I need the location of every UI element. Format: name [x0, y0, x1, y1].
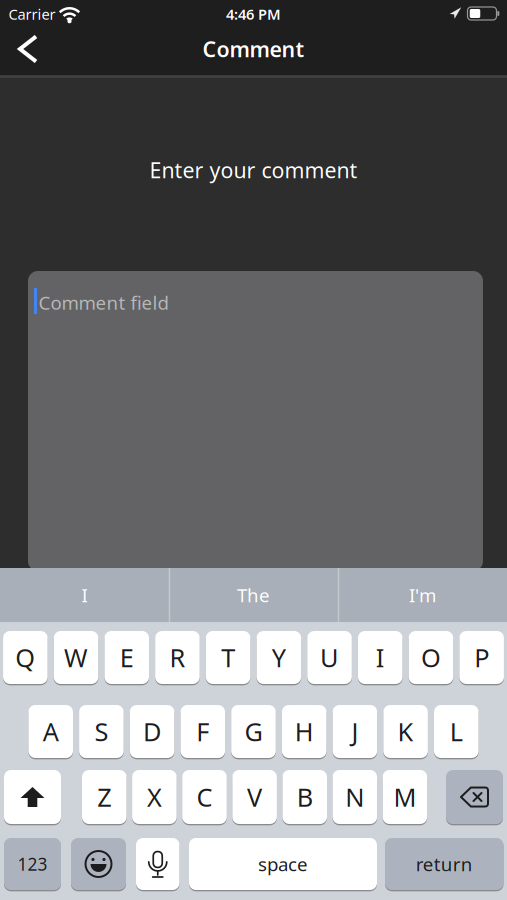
staticText: O — [421, 641, 441, 674]
button[interactable]: H — [282, 705, 326, 758]
button[interactable]: B — [282, 770, 327, 824]
button[interactable]: G — [231, 705, 276, 758]
staticText: I — [81, 583, 87, 607]
button[interactable]: Delete — [446, 770, 503, 824]
button[interactable]: V — [232, 770, 277, 824]
staticText: C — [196, 780, 212, 814]
button[interactable]: 123 — [4, 838, 61, 890]
staticText: R — [169, 641, 185, 674]
button[interactable]: Y — [257, 631, 301, 684]
staticText: P — [474, 641, 489, 674]
staticText: B — [297, 780, 313, 814]
button[interactable]: I — [358, 631, 403, 684]
staticText: K — [398, 715, 414, 748]
button[interactable]: O — [409, 631, 453, 684]
button[interactable]: X — [132, 770, 177, 824]
staticText: E — [120, 641, 134, 674]
button[interactable]: L — [434, 705, 479, 758]
button[interactable]: N — [332, 770, 377, 824]
staticText: Z — [97, 780, 111, 814]
button[interactable]: U — [307, 631, 352, 684]
button[interactable]: F — [180, 705, 225, 758]
button[interactable]: S — [79, 705, 124, 758]
staticText: T — [221, 641, 235, 674]
button[interactable]: Z — [82, 770, 127, 824]
button[interactable]: E — [104, 631, 149, 684]
button[interactable]: A — [28, 705, 73, 758]
button[interactable]: Comment field — [28, 271, 483, 571]
staticText: W — [64, 641, 88, 674]
button[interactable]: I — [4, 568, 164, 622]
staticText: Carrier — [8, 4, 55, 24]
button[interactable]: space — [189, 838, 377, 890]
staticText: G — [244, 715, 262, 748]
button[interactable]: K — [383, 705, 428, 758]
button[interactable]: Shift — [4, 770, 61, 824]
button[interactable]: return — [385, 838, 503, 890]
button[interactable]: C — [182, 770, 227, 824]
button[interactable]: M — [383, 770, 427, 824]
staticText: Q — [15, 641, 35, 674]
button[interactable]: Dictation — [136, 838, 179, 890]
staticText: U — [320, 641, 339, 674]
staticText: 123 — [17, 852, 47, 875]
staticText: Y — [272, 641, 286, 674]
staticText: I'm — [409, 583, 436, 607]
button[interactable]: Back — [20, 36, 36, 61]
staticText: N — [345, 780, 364, 814]
staticText: Enter your comment — [149, 156, 357, 184]
staticText: I — [376, 641, 385, 674]
staticText: L — [450, 715, 463, 748]
staticText: Comment — [202, 35, 304, 63]
staticText: F — [196, 715, 209, 748]
button[interactable]: J — [333, 705, 377, 758]
staticText: X — [147, 780, 162, 814]
button[interactable]: D — [130, 705, 174, 758]
button[interactable]: P — [459, 631, 504, 684]
staticText: 4:46 PM — [226, 4, 281, 24]
button[interactable]: Emoji — [71, 838, 126, 890]
staticText: H — [295, 715, 314, 748]
button[interactable]: The — [173, 568, 333, 622]
button[interactable]: Q — [3, 631, 48, 684]
staticText: V — [247, 780, 262, 814]
staticText: Comment field — [38, 290, 168, 315]
staticText: return — [416, 852, 473, 876]
button[interactable]: I'm — [342, 568, 502, 622]
button[interactable]: W — [54, 631, 98, 684]
staticText: J — [351, 715, 358, 748]
staticText: D — [143, 715, 161, 748]
staticText: The — [237, 583, 270, 607]
staticText: space — [258, 852, 308, 876]
staticText: S — [94, 715, 108, 748]
staticText: A — [43, 715, 59, 748]
button[interactable]: T — [206, 631, 250, 684]
button[interactable]: R — [155, 631, 200, 684]
staticText: M — [393, 780, 416, 814]
